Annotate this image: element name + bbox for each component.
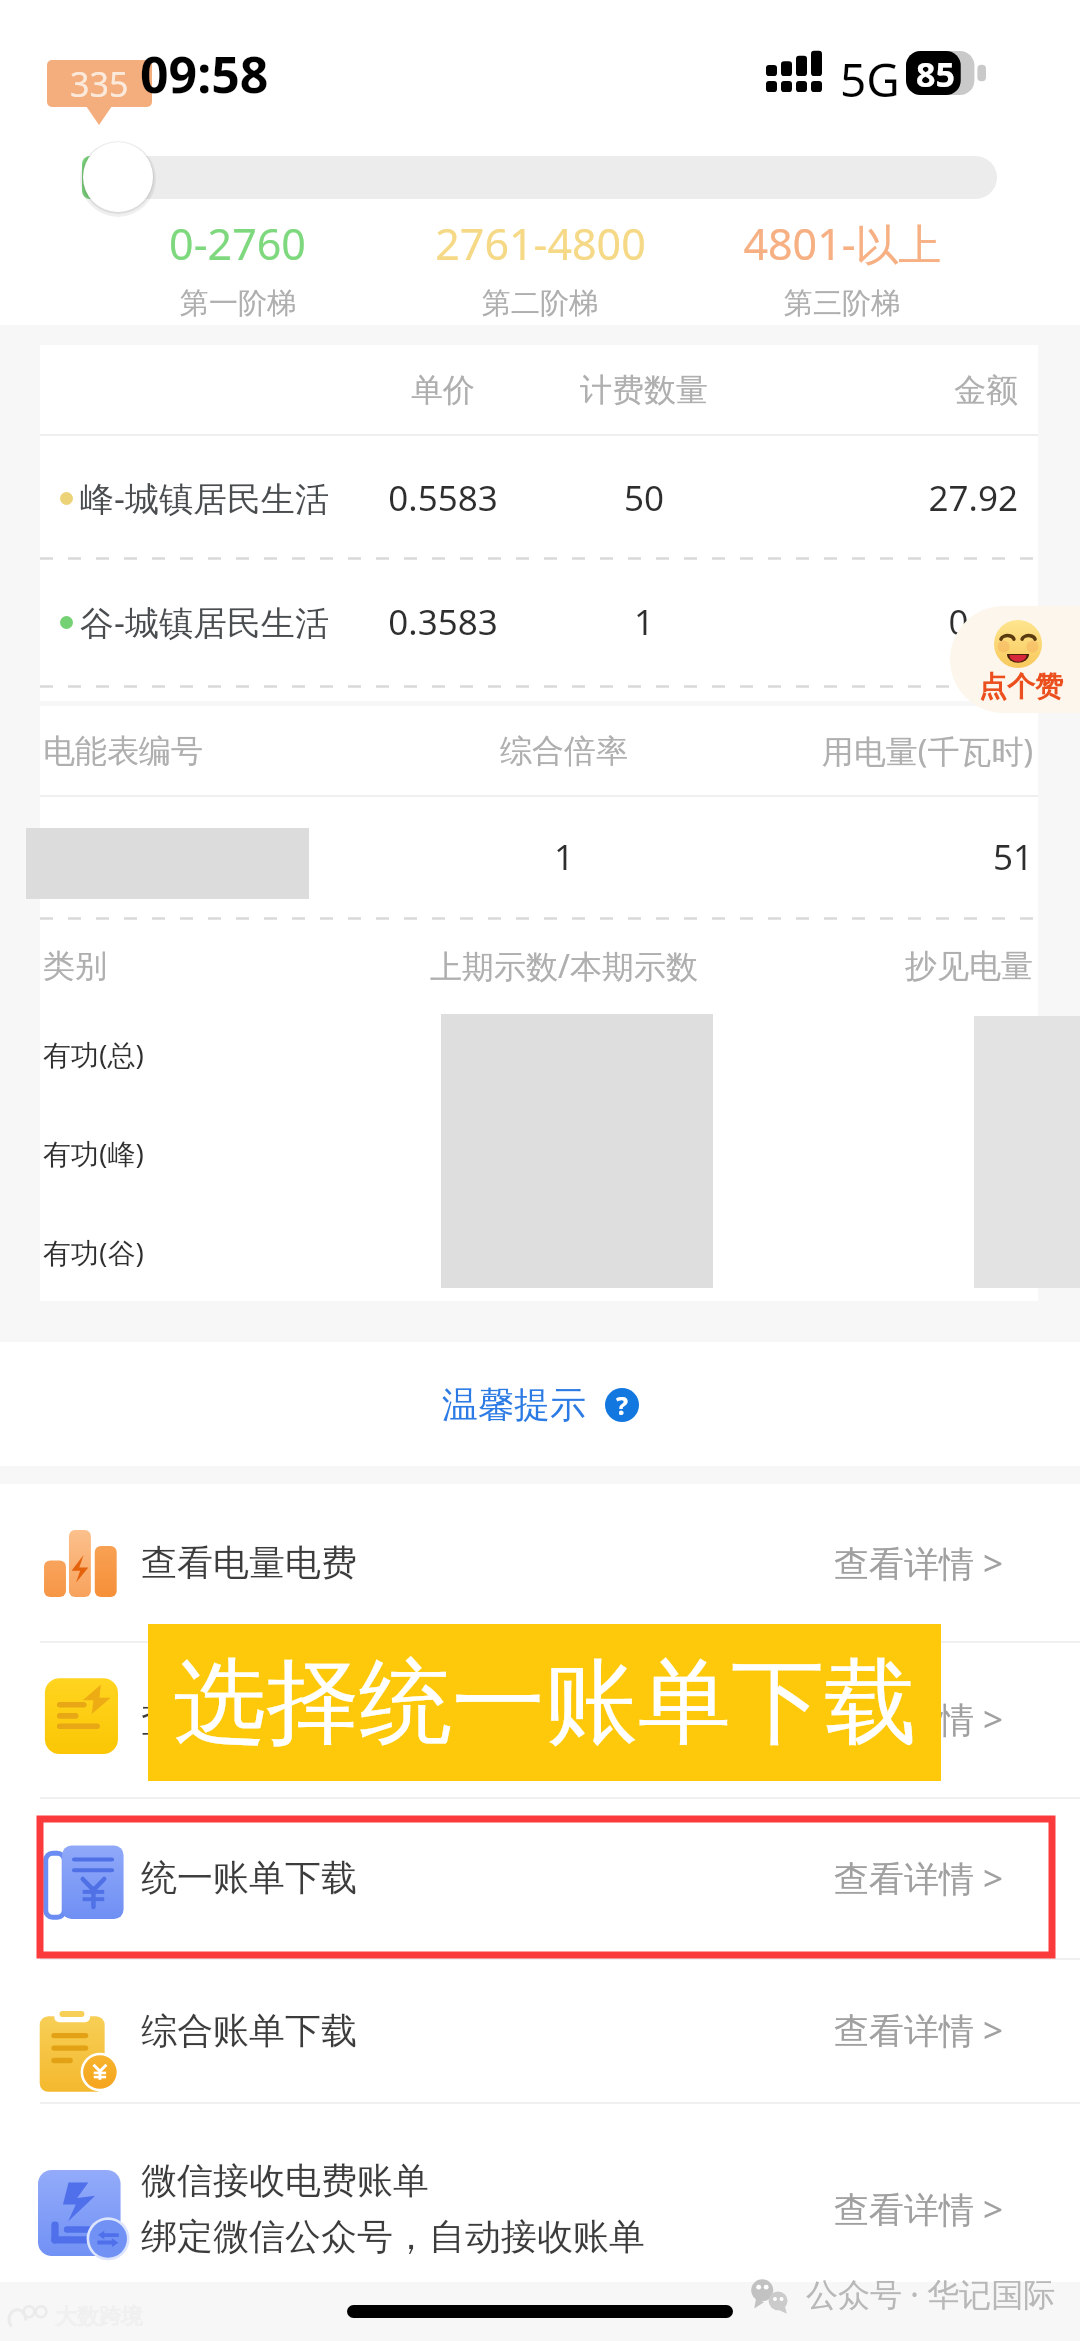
staticText: 类别 xyxy=(43,946,403,986)
staticText: 综合账单下载 xyxy=(141,2008,357,2053)
staticText: 微信接收电费账单 xyxy=(141,2158,429,2203)
staticText: 用电量(千瓦时) xyxy=(725,729,1033,773)
staticText: 第二阶梯 xyxy=(482,285,598,322)
staticText: 点个赞 xyxy=(979,669,1063,704)
staticText: 1 xyxy=(536,598,752,646)
staticText: 有功(总) xyxy=(43,1035,144,1073)
staticText: 计费数量 xyxy=(536,370,752,410)
staticText: 09:58 xyxy=(140,40,269,108)
staticText: 查看详情 > xyxy=(834,2006,1004,2054)
staticText: 金额 xyxy=(752,370,1018,410)
staticText: 谷-城镇居民生活 xyxy=(80,599,329,645)
staticText: 335 xyxy=(70,61,129,107)
staticText: 1 xyxy=(403,833,725,881)
staticText: 查看详情 > xyxy=(834,1695,1004,1743)
staticText: 5G xyxy=(840,48,900,111)
staticText: ? xyxy=(616,1388,628,1422)
staticText: 2761-4800 xyxy=(435,214,646,273)
staticText: 51 xyxy=(725,833,1033,881)
staticText: 抄见电量 xyxy=(725,946,1033,986)
staticText: 0.36 xyxy=(752,598,1018,646)
button[interactable]: 查看电量电费 xyxy=(0,1484,1080,1641)
button[interactable]: 查看电费账单 xyxy=(0,1641,1080,1797)
button[interactable]: 微信接收电费账单 xyxy=(0,2122,1080,2295)
staticText: 50 xyxy=(536,474,752,522)
staticText: 查看详情 > xyxy=(834,2185,1004,2233)
button[interactable]: 综合账单下载 xyxy=(0,1958,1080,2102)
staticText: 统一账单下载 xyxy=(141,1855,357,1900)
staticText: 0-2760 xyxy=(169,214,306,273)
staticText: 综合倍率 xyxy=(403,731,725,771)
staticText: 选择统一账单下载 xyxy=(173,1644,917,1761)
staticText: 27.92 xyxy=(752,474,1018,522)
staticText: 公众号 · 华记国际 xyxy=(806,2272,1056,2316)
staticText: 电能表编号 xyxy=(43,731,403,771)
staticText: 大数跨境 xyxy=(55,2303,143,2331)
staticText: 第一阶梯 xyxy=(180,285,296,322)
staticText: 绑定微信公众号，自动接收账单 xyxy=(141,2214,645,2259)
staticText: 第三阶梯 xyxy=(784,285,900,322)
staticText: 85 xyxy=(916,51,955,95)
button[interactable]: 统一账单下载 xyxy=(0,1797,1080,1958)
staticText: 4801-以上 xyxy=(743,214,942,273)
staticText: 查看电费账单 xyxy=(141,1697,357,1742)
staticText: 有功(谷) xyxy=(43,1233,144,1271)
staticText: 0.5583 xyxy=(350,474,536,522)
staticText: 有功(峰) xyxy=(43,1134,144,1172)
staticText: 单价 xyxy=(350,370,536,410)
staticText: 0.3583 xyxy=(350,598,536,646)
staticText: 峰-城镇居民生活 xyxy=(80,475,329,521)
staticText: 查看详情 > xyxy=(834,1539,1004,1587)
button[interactable]: 温馨提示 xyxy=(382,1358,699,1451)
staticText: 温馨提示 xyxy=(442,1382,586,1427)
button[interactable]: Like xyxy=(950,606,1080,713)
staticText: 查看电量电费 xyxy=(141,1540,357,1585)
staticText: 查看详情 > xyxy=(834,1854,1004,1902)
staticText: 上期示数/本期示数 xyxy=(403,944,725,988)
